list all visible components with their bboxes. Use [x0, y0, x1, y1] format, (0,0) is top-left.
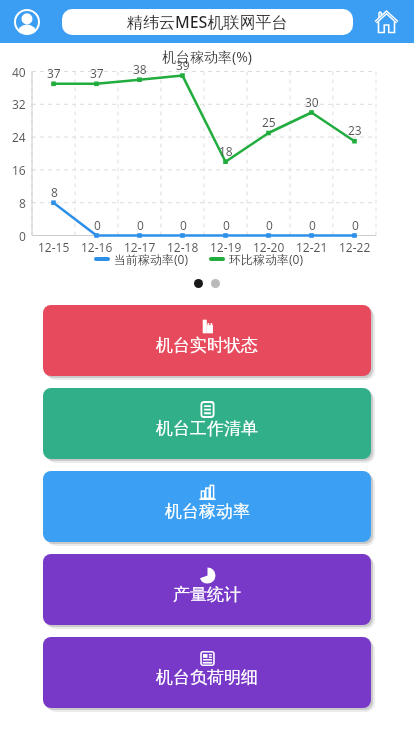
staticText: 机台稼动率 — [165, 501, 250, 522]
staticText: 25 — [262, 114, 276, 130]
staticText: 38 — [133, 61, 147, 77]
staticText: 当前稼动率(0) — [114, 251, 189, 267]
button[interactable]: 机台工作清单 — [43, 388, 371, 459]
staticText: 12-16 — [81, 239, 113, 255]
staticText: 0 — [180, 217, 187, 233]
button[interactable] — [14, 9, 40, 35]
staticText: 12-19 — [210, 239, 242, 255]
staticText: 机台实时状态 — [156, 335, 258, 356]
staticText: 18 — [219, 143, 233, 159]
staticText: 0 — [309, 217, 316, 233]
button[interactable]: 机台实时状态 — [43, 305, 371, 376]
button[interactable]: 机台稼动率 — [43, 471, 371, 542]
staticText: 8 — [51, 184, 58, 200]
button[interactable]: 机台负荷明细 — [43, 637, 371, 708]
button[interactable]: 精纬云MES机联网平台 — [62, 9, 353, 35]
staticText: 30 — [305, 94, 319, 110]
staticText: 39 — [176, 57, 190, 73]
staticText: 24 — [12, 129, 26, 145]
staticText: 32 — [12, 96, 26, 112]
button[interactable]: 产量统计 — [43, 554, 371, 625]
staticText: 精纬云MES机联网平台 — [127, 11, 288, 33]
staticText: 0 — [19, 228, 26, 244]
staticText: 环比稼动率(0) — [229, 251, 304, 267]
staticText: 12-17 — [124, 239, 156, 255]
staticText: 16 — [12, 162, 26, 178]
staticText: 0 — [94, 217, 101, 233]
staticText: 12-18 — [167, 239, 199, 255]
staticText: 12-15 — [38, 239, 70, 255]
staticText: 机台负荷明细 — [156, 667, 258, 688]
staticText: 12-21 — [296, 239, 328, 255]
staticText: 23 — [348, 122, 362, 138]
staticText: 8 — [19, 195, 26, 211]
staticText: 37 — [90, 65, 104, 81]
staticText: 12-22 — [339, 239, 371, 255]
staticText: 0 — [137, 217, 144, 233]
staticText: 0 — [223, 217, 230, 233]
staticText: 0 — [266, 217, 273, 233]
staticText: 37 — [47, 65, 61, 81]
staticText: 0 — [352, 217, 359, 233]
staticText: 12-20 — [253, 239, 285, 255]
staticText: 机台工作清单 — [156, 418, 258, 439]
button[interactable] — [374, 9, 399, 34]
staticText: 机台稼动率(%) — [162, 47, 253, 66]
staticText: 40 — [12, 64, 26, 80]
staticText: 产量统计 — [173, 584, 241, 605]
